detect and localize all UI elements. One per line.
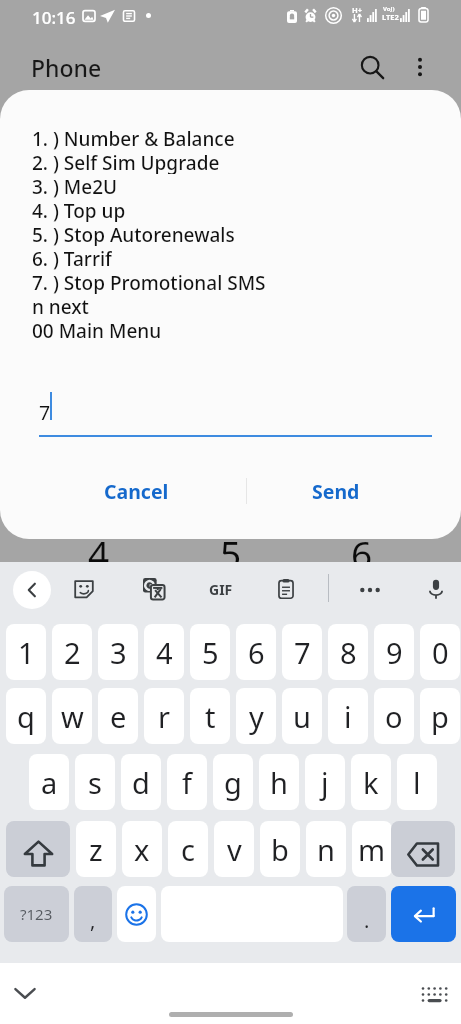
staticText: 2. ) Self Sim Upgrade (32, 150, 220, 174)
staticText: 3. ) Me2U (32, 174, 118, 198)
button[interactable]: b (260, 821, 300, 877)
staticText: ?123 (20, 904, 53, 924)
button[interactable]: p (420, 688, 460, 744)
staticText: 0 (432, 633, 449, 672)
staticText: GIF (209, 580, 233, 599)
button[interactable]: shift (6, 821, 70, 877)
staticText: b (271, 830, 289, 869)
staticText: r (158, 697, 170, 736)
button[interactable]: Clipboard (272, 575, 300, 603)
button[interactable]: , (74, 886, 112, 942)
button[interactable]: 2 (52, 624, 92, 680)
button[interactable]: 1 (6, 624, 46, 680)
staticText: 00 Main Menu (32, 318, 162, 344)
button[interactable]: n (306, 821, 346, 877)
button[interactable] (117, 886, 156, 942)
button[interactable]: s (75, 754, 115, 810)
button[interactable]: v (214, 821, 254, 877)
staticText: . (364, 907, 370, 934)
button[interactable]: h (259, 754, 299, 810)
staticText: v (227, 830, 242, 869)
button[interactable]: Hide keyboard (5, 972, 45, 1012)
staticText: 7 (294, 633, 311, 672)
button[interactable]: Search (348, 43, 396, 91)
staticText: 4. ) Top up (32, 198, 126, 222)
button[interactable]: More (355, 575, 385, 605)
button[interactable]: j (305, 754, 345, 810)
button[interactable]: backspace (391, 821, 455, 877)
button[interactable]: 0 (420, 624, 460, 680)
staticText: y (249, 697, 264, 736)
button[interactable]: x (122, 821, 162, 877)
button[interactable]: o (374, 688, 414, 744)
staticText: d (132, 763, 150, 802)
button[interactable]: q (6, 688, 46, 744)
button[interactable]: 9 (374, 624, 414, 680)
button[interactable]: w (52, 688, 92, 744)
staticText: j (321, 763, 329, 802)
button[interactable]: r (144, 688, 184, 744)
staticText: Cancel (104, 478, 169, 505)
button[interactable]: f (167, 754, 207, 810)
button[interactable]: y (236, 688, 276, 744)
button[interactable]: 5 (190, 624, 230, 680)
staticText: n next (32, 294, 89, 318)
button[interactable]: 3 (98, 624, 138, 680)
button[interactable]: ?123 (4, 886, 69, 942)
staticText: 7. ) Stop Promotional SMS (32, 270, 266, 294)
button[interactable]: e (98, 688, 138, 744)
staticText: g (224, 763, 242, 802)
button[interactable]: m (352, 821, 392, 877)
staticText: Phone (31, 52, 102, 83)
staticText: 9 (386, 633, 403, 672)
button[interactable]: t (190, 688, 230, 744)
button[interactable]: g (213, 754, 253, 810)
button[interactable]: enter (391, 886, 456, 942)
button[interactable]: Back (13, 571, 51, 609)
button[interactable]: 6 (236, 624, 276, 680)
staticText: 7 (39, 399, 51, 426)
staticText: u (293, 697, 311, 736)
button[interactable]: More options (396, 43, 444, 91)
staticText: q (17, 697, 35, 736)
staticText: 4 (88, 528, 110, 578)
button[interactable]: Voice input (422, 575, 450, 603)
staticText: t (205, 697, 216, 736)
button[interactable]: Stickers (70, 575, 98, 603)
button[interactable]: i (328, 688, 368, 744)
staticText: Send (312, 478, 360, 505)
button[interactable]: k (351, 754, 391, 810)
button[interactable]: Keyboard layout (423, 988, 447, 1012)
button[interactable]: u (282, 688, 322, 744)
button[interactable]: d (121, 754, 161, 810)
staticText: i (344, 697, 352, 736)
staticText: 1. ) Number & Balance (32, 126, 235, 150)
button[interactable]: . (347, 886, 386, 942)
staticText: 5 (220, 528, 242, 578)
staticText: e (110, 697, 127, 736)
staticText: 8 (340, 633, 357, 672)
staticText: l (413, 763, 421, 802)
button[interactable]: GIF (200, 575, 242, 603)
button[interactable]: 7 (282, 624, 322, 680)
button[interactable]: 8 (328, 624, 368, 680)
button[interactable]: Translate (140, 575, 168, 603)
button[interactable]: Send (241, 465, 431, 517)
staticText: z (89, 830, 103, 869)
button[interactable]: Cancel (31, 465, 242, 517)
staticText: x (134, 830, 150, 869)
button[interactable]: c (168, 821, 208, 877)
button[interactable]: l (397, 754, 437, 810)
staticText: 6 (248, 633, 265, 672)
staticText: 5 (202, 633, 219, 672)
button[interactable]: a (29, 754, 69, 810)
staticText: 4 (156, 633, 173, 672)
button[interactable]: z (76, 821, 116, 877)
staticText: k (363, 763, 379, 802)
staticText: p (431, 697, 449, 736)
staticText: 10:16 (32, 6, 76, 29)
staticText: 3 (110, 633, 127, 672)
button[interactable]: 4 (144, 624, 184, 680)
staticText: c (181, 830, 195, 869)
